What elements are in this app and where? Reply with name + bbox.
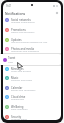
- staticText: Music: [11, 76, 19, 80]
- staticText: Security: [11, 115, 22, 119]
- staticText: Notifications: [5, 11, 26, 15]
- button[interactable]: Updates: [3, 35, 61, 45]
- staticText: Memories and highlights: [11, 49, 40, 52]
- button[interactable]: Music: [3, 73, 61, 83]
- button[interactable]: Wellbeing: [3, 102, 61, 112]
- staticText: Daily summary: [11, 107, 28, 110]
- staticText: Account alerts: [11, 117, 28, 120]
- staticText: 9:41: [6, 4, 12, 8]
- button[interactable]: Messages: [3, 64, 61, 74]
- staticText: Manage notifications: [11, 20, 35, 23]
- staticText: Wellbeing: [11, 105, 24, 109]
- staticText: Chats and groups: [11, 69, 31, 72]
- staticText: Photos and media: [11, 47, 34, 51]
- staticText: Promotions: [11, 28, 26, 32]
- staticText: Social networks: [11, 18, 31, 22]
- button[interactable]: Tweet: [0, 54, 60, 65]
- button[interactable]: Cloud drive: [3, 92, 61, 102]
- staticText: Updates: [11, 38, 22, 42]
- button[interactable]: Calendar: [3, 83, 61, 93]
- staticText: Messages: [11, 67, 24, 71]
- button[interactable]: Promotions: [3, 25, 61, 35]
- staticText: Calendar: [11, 86, 23, 90]
- staticText: Events and reminders: [11, 88, 36, 91]
- button[interactable]: Photos and media: [3, 44, 61, 54]
- button[interactable]: Search: [54, 10, 59, 15]
- staticText: Cloud drive: [11, 95, 26, 99]
- staticText: Shared files: [11, 97, 25, 100]
- button[interactable]: Security: [3, 112, 61, 120]
- button[interactable]: Social networks: [3, 15, 61, 25]
- staticText: App and system updates for you: [11, 40, 48, 43]
- staticText: Tweet: [8, 56, 16, 60]
- staticText: Now: [8, 61, 13, 64]
- staticText: Playlists and mixes: [11, 78, 33, 81]
- staticText: Offers and discounts: [11, 30, 35, 33]
